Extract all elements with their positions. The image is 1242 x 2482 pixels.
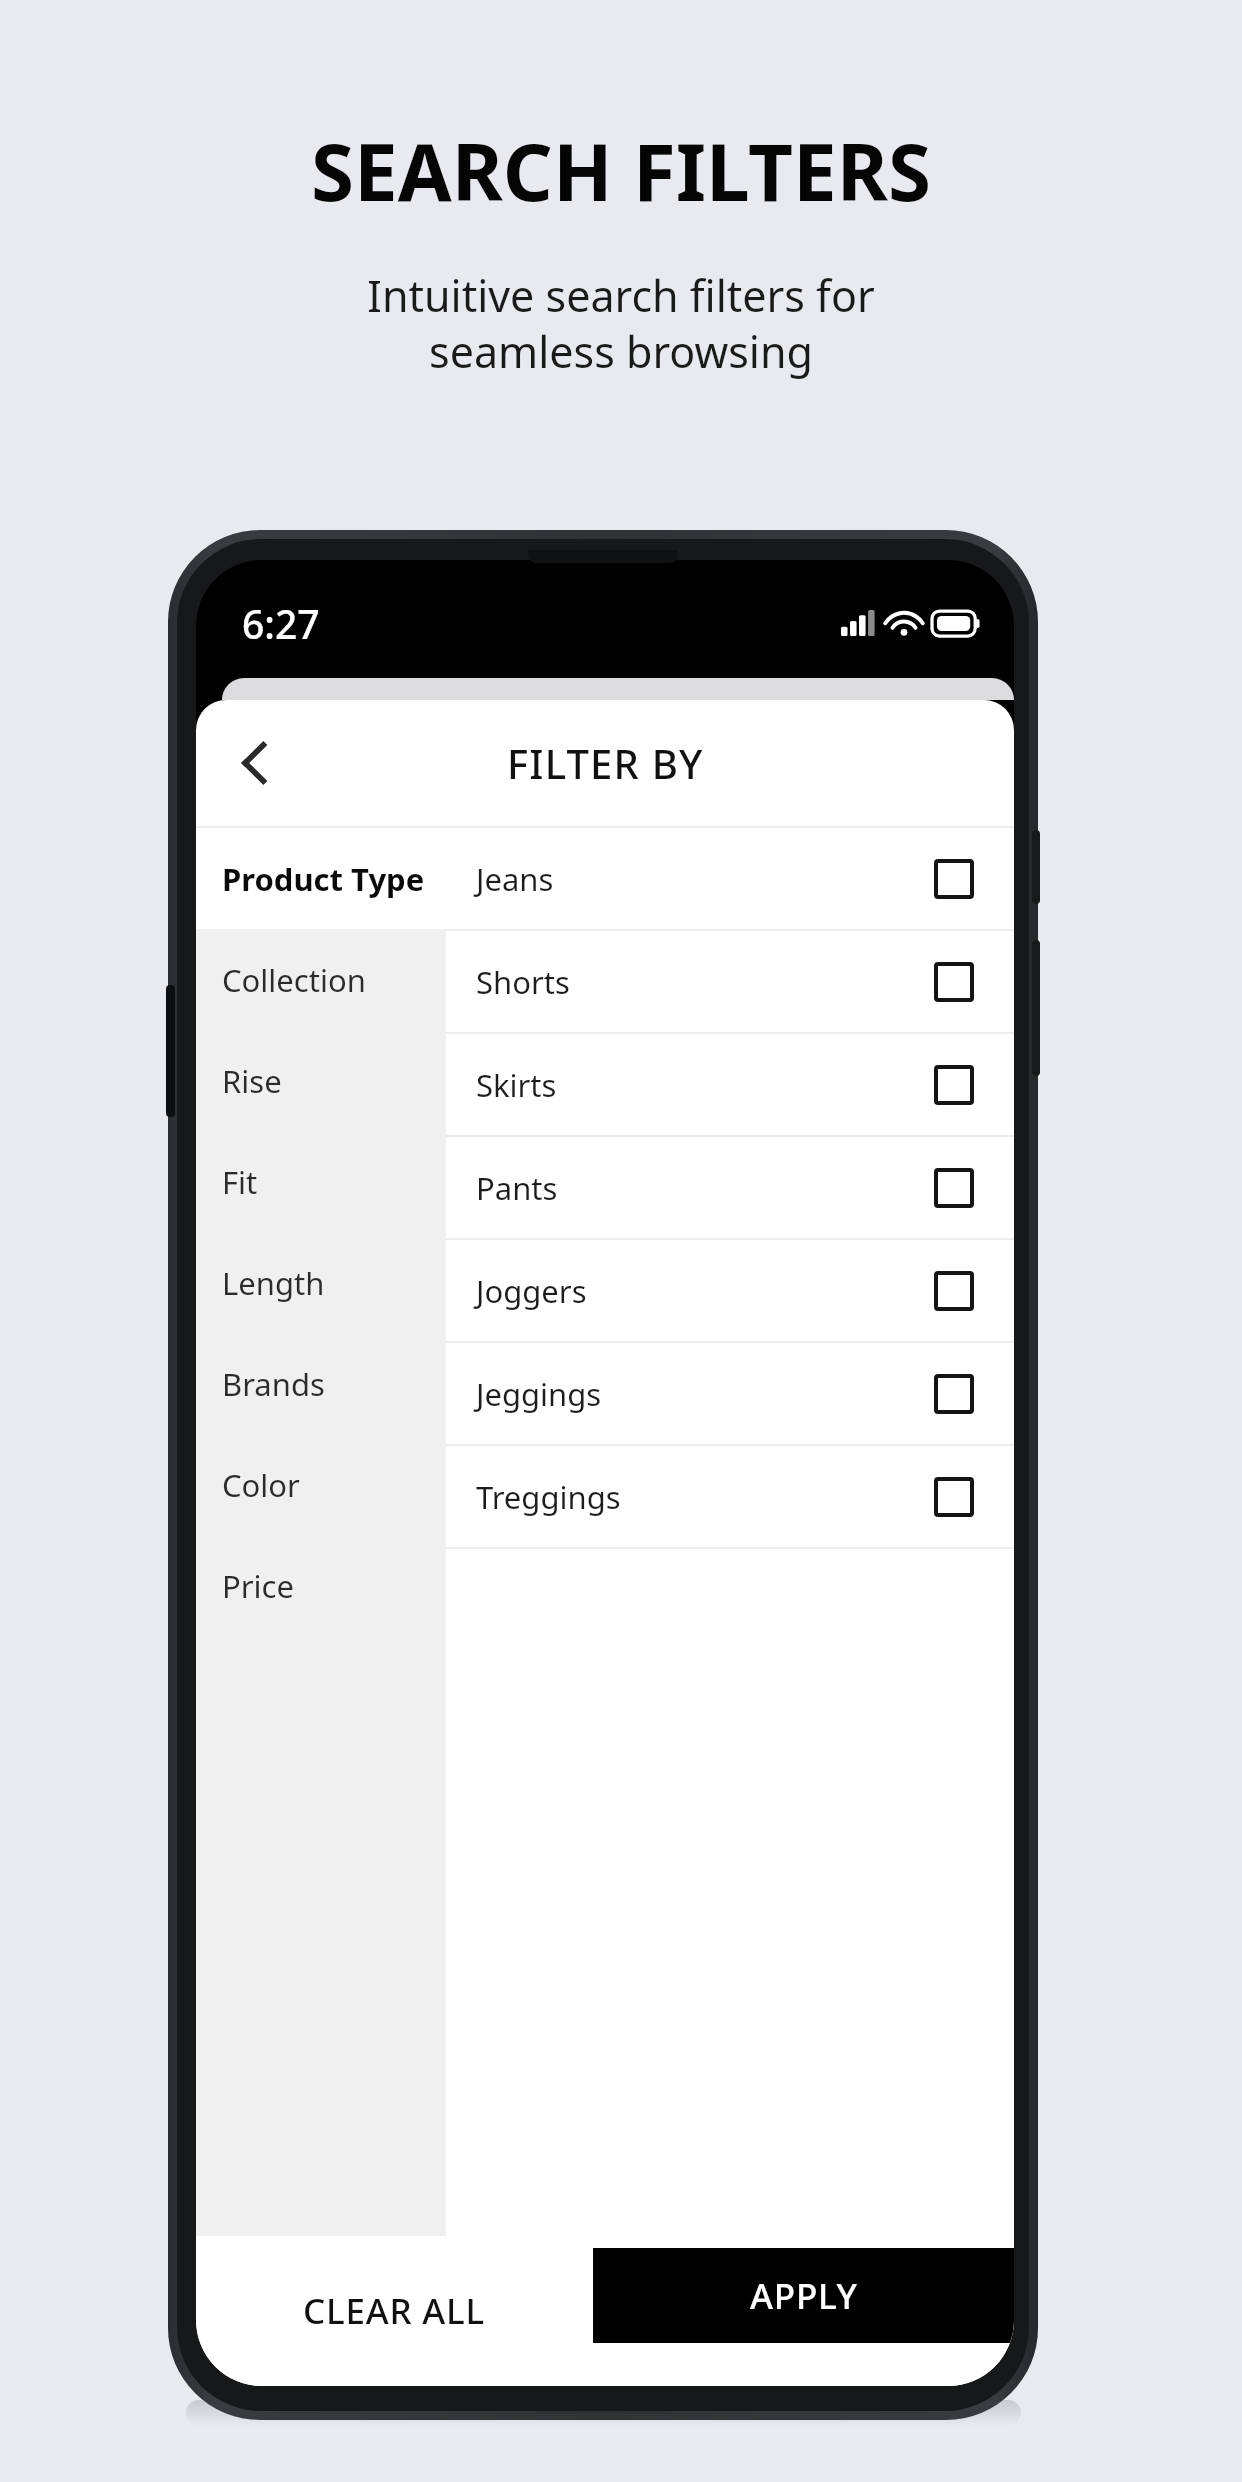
- staticText: Product Type: [222, 858, 425, 900]
- staticText: 6:27: [242, 597, 320, 650]
- staticText: Shorts: [476, 961, 570, 1003]
- button[interactable]: Pants: [446, 1137, 1014, 1238]
- button[interactable]: Jeggings: [446, 1343, 1014, 1444]
- button[interactable]: Product Type: [196, 828, 446, 929]
- staticText: Treggings: [476, 1476, 621, 1518]
- staticText: Intuitive search filters for seamless br…: [367, 266, 875, 381]
- button[interactable]: Color: [196, 1434, 446, 1535]
- button[interactable]: Joggers: [446, 1240, 1014, 1341]
- button[interactable]: Price: [196, 1535, 446, 1636]
- button[interactable]: Rise: [196, 1030, 446, 1131]
- staticText: Pants: [476, 1167, 558, 1209]
- staticText: Joggers: [476, 1270, 587, 1312]
- staticText: Collection: [222, 959, 366, 1001]
- button[interactable]: Jeans: [446, 828, 1014, 929]
- staticText: Length: [222, 1262, 325, 1304]
- staticText: Price: [222, 1565, 294, 1607]
- staticText: Brands: [222, 1363, 325, 1405]
- button[interactable]: Length: [196, 1232, 446, 1333]
- staticText: Fit: [222, 1161, 258, 1203]
- button[interactable]: Skirts: [446, 1034, 1014, 1135]
- button[interactable]: Fit: [196, 1131, 446, 1232]
- button[interactable]: CLEAR ALL: [196, 2236, 593, 2386]
- staticText: Skirts: [476, 1064, 557, 1106]
- staticText: FILTER BY: [507, 736, 704, 790]
- staticText: APPLY: [750, 2272, 858, 2320]
- staticText: Jeans: [476, 858, 554, 900]
- staticText: Color: [222, 1464, 300, 1506]
- button[interactable]: Brands: [196, 1333, 446, 1434]
- button[interactable]: Treggings: [446, 1446, 1014, 1547]
- button[interactable]: Back: [214, 723, 294, 803]
- staticText: SEARCH FILTERS: [311, 118, 931, 224]
- staticText: CLEAR ALL: [303, 2287, 486, 2335]
- button[interactable]: Collection: [196, 929, 446, 1030]
- button[interactable]: APPLY: [593, 2248, 1014, 2343]
- staticText: Rise: [222, 1060, 282, 1102]
- button[interactable]: Shorts: [446, 931, 1014, 1032]
- staticText: Jeggings: [476, 1373, 602, 1415]
